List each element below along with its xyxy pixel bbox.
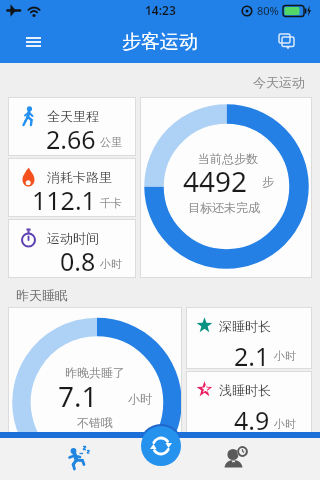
staticText: 步客运动 bbox=[122, 30, 198, 54]
staticText: 今天运动 bbox=[253, 74, 305, 90]
button[interactable]: 消耗卡路里 bbox=[8, 158, 136, 217]
staticText: 4492 bbox=[183, 162, 248, 200]
staticText: 昨晚共睡了 bbox=[65, 365, 125, 380]
staticText: 深睡时长 bbox=[219, 318, 271, 334]
staticText: 全天里程 bbox=[47, 108, 99, 124]
staticText: 小时 bbox=[128, 391, 152, 406]
staticText: 小时 bbox=[274, 417, 296, 431]
button[interactable] bbox=[274, 29, 300, 55]
button[interactable] bbox=[141, 426, 181, 466]
staticText: 80% bbox=[257, 3, 279, 18]
staticText: 2.66 bbox=[46, 122, 96, 156]
staticText: 不错哦 bbox=[77, 415, 113, 430]
staticText: 步 bbox=[262, 174, 274, 189]
staticText: 当前总步数 bbox=[198, 151, 258, 166]
button[interactable]: 当前总步数 bbox=[140, 97, 312, 278]
button[interactable]: 浅睡时长 bbox=[186, 371, 312, 461]
staticText: 4.9 bbox=[234, 403, 270, 437]
button[interactable]: 深睡时长 bbox=[186, 307, 312, 369]
staticText: 千卡 bbox=[100, 196, 122, 210]
staticText: 消耗卡路里 bbox=[47, 169, 112, 185]
staticText: 运动时间 bbox=[47, 230, 99, 246]
staticText: 浅睡时长 bbox=[219, 382, 271, 398]
staticText: 14:23 bbox=[145, 2, 176, 18]
staticText: 公里 bbox=[100, 135, 122, 149]
staticText: 112.1 bbox=[32, 183, 96, 217]
button[interactable] bbox=[207, 438, 267, 480]
staticText: 目标还未完成 bbox=[188, 200, 260, 215]
staticText: 昨天睡眠 bbox=[16, 287, 68, 303]
staticText: 7.1 bbox=[58, 377, 98, 415]
button[interactable]: 运动时间 bbox=[8, 219, 136, 278]
staticText: 0.8 bbox=[60, 244, 96, 278]
staticText: 小时 bbox=[274, 349, 296, 363]
button[interactable]: 昨晚共睡了 bbox=[8, 307, 182, 460]
staticText: 小时 bbox=[100, 257, 122, 271]
button[interactable] bbox=[18, 27, 48, 57]
staticText: 2.1 bbox=[234, 339, 270, 369]
button[interactable] bbox=[50, 438, 110, 480]
button[interactable]: 全天里程 bbox=[8, 97, 136, 156]
